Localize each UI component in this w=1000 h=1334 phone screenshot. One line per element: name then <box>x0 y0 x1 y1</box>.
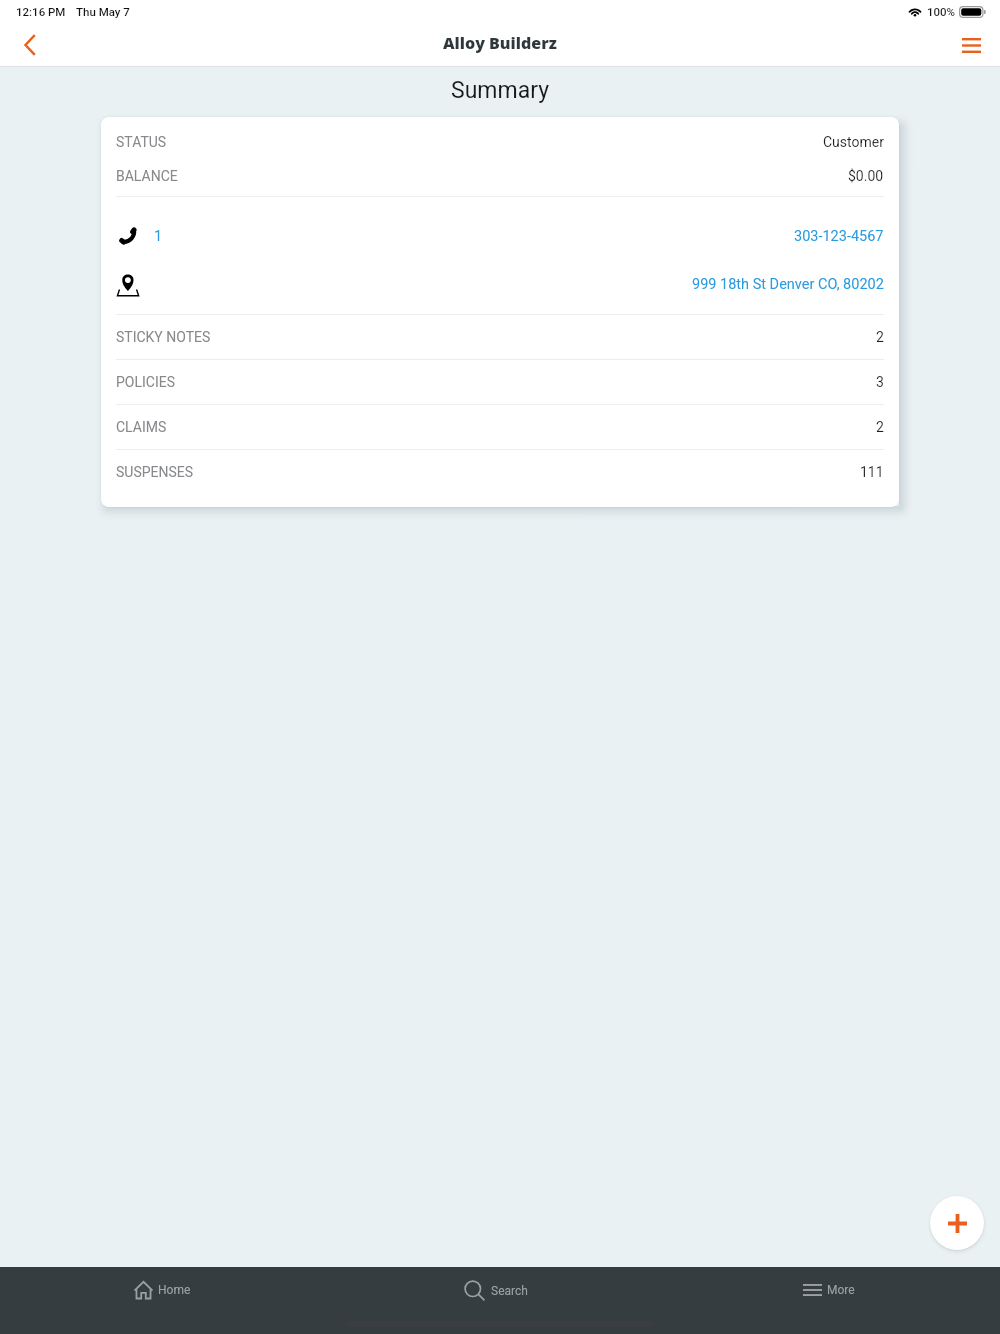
button[interactable]: 999 18th St Denver CO, 80202 <box>116 260 884 309</box>
staticText: More <box>827 1283 855 1297</box>
button[interactable]: 1 <box>116 212 884 260</box>
button[interactable]: Search <box>334 1267 667 1313</box>
staticText: Thu May 7 <box>76 5 130 18</box>
staticText: 111 <box>860 464 884 480</box>
staticText: 100% <box>927 5 956 18</box>
staticText: 1 <box>154 228 163 245</box>
staticText: 999 18th St Denver CO, 80202 <box>692 276 884 293</box>
staticText: 12:16 PM <box>16 5 66 18</box>
button[interactable]: STICKY NOTES <box>116 315 884 359</box>
staticText: BALANCE <box>116 168 178 184</box>
staticText: 303-123-4567 <box>794 228 884 245</box>
staticText: STICKY NOTES <box>116 329 211 345</box>
staticText: STATUS <box>116 134 167 150</box>
button[interactable]: STATUS <box>116 125 884 159</box>
staticText: SUSPENSES <box>116 464 194 480</box>
staticText: 2 <box>876 419 884 435</box>
button[interactable]: More <box>667 1267 1000 1313</box>
button[interactable]: SUSPENSES <box>116 450 884 494</box>
staticText: 3 <box>876 374 884 390</box>
button[interactable]: Back <box>11 27 47 63</box>
button[interactable]: Menu <box>953 27 989 63</box>
button[interactable]: CLAIMS <box>116 405 884 449</box>
button[interactable]: POLICIES <box>116 360 884 404</box>
staticText: 2 <box>876 329 884 345</box>
staticText: POLICIES <box>116 374 176 390</box>
staticText: Search <box>491 1284 528 1298</box>
staticText: Customer <box>823 134 884 150</box>
staticText: CLAIMS <box>116 419 167 435</box>
staticText: $0.00 <box>848 168 884 184</box>
button[interactable]: BALANCE <box>116 159 884 193</box>
staticText: Home <box>158 1283 191 1297</box>
button[interactable]: Home <box>0 1267 334 1313</box>
button[interactable]: Add <box>930 1196 984 1250</box>
staticText: Alloy Builderz <box>443 32 557 54</box>
staticText: Summary <box>451 77 550 104</box>
